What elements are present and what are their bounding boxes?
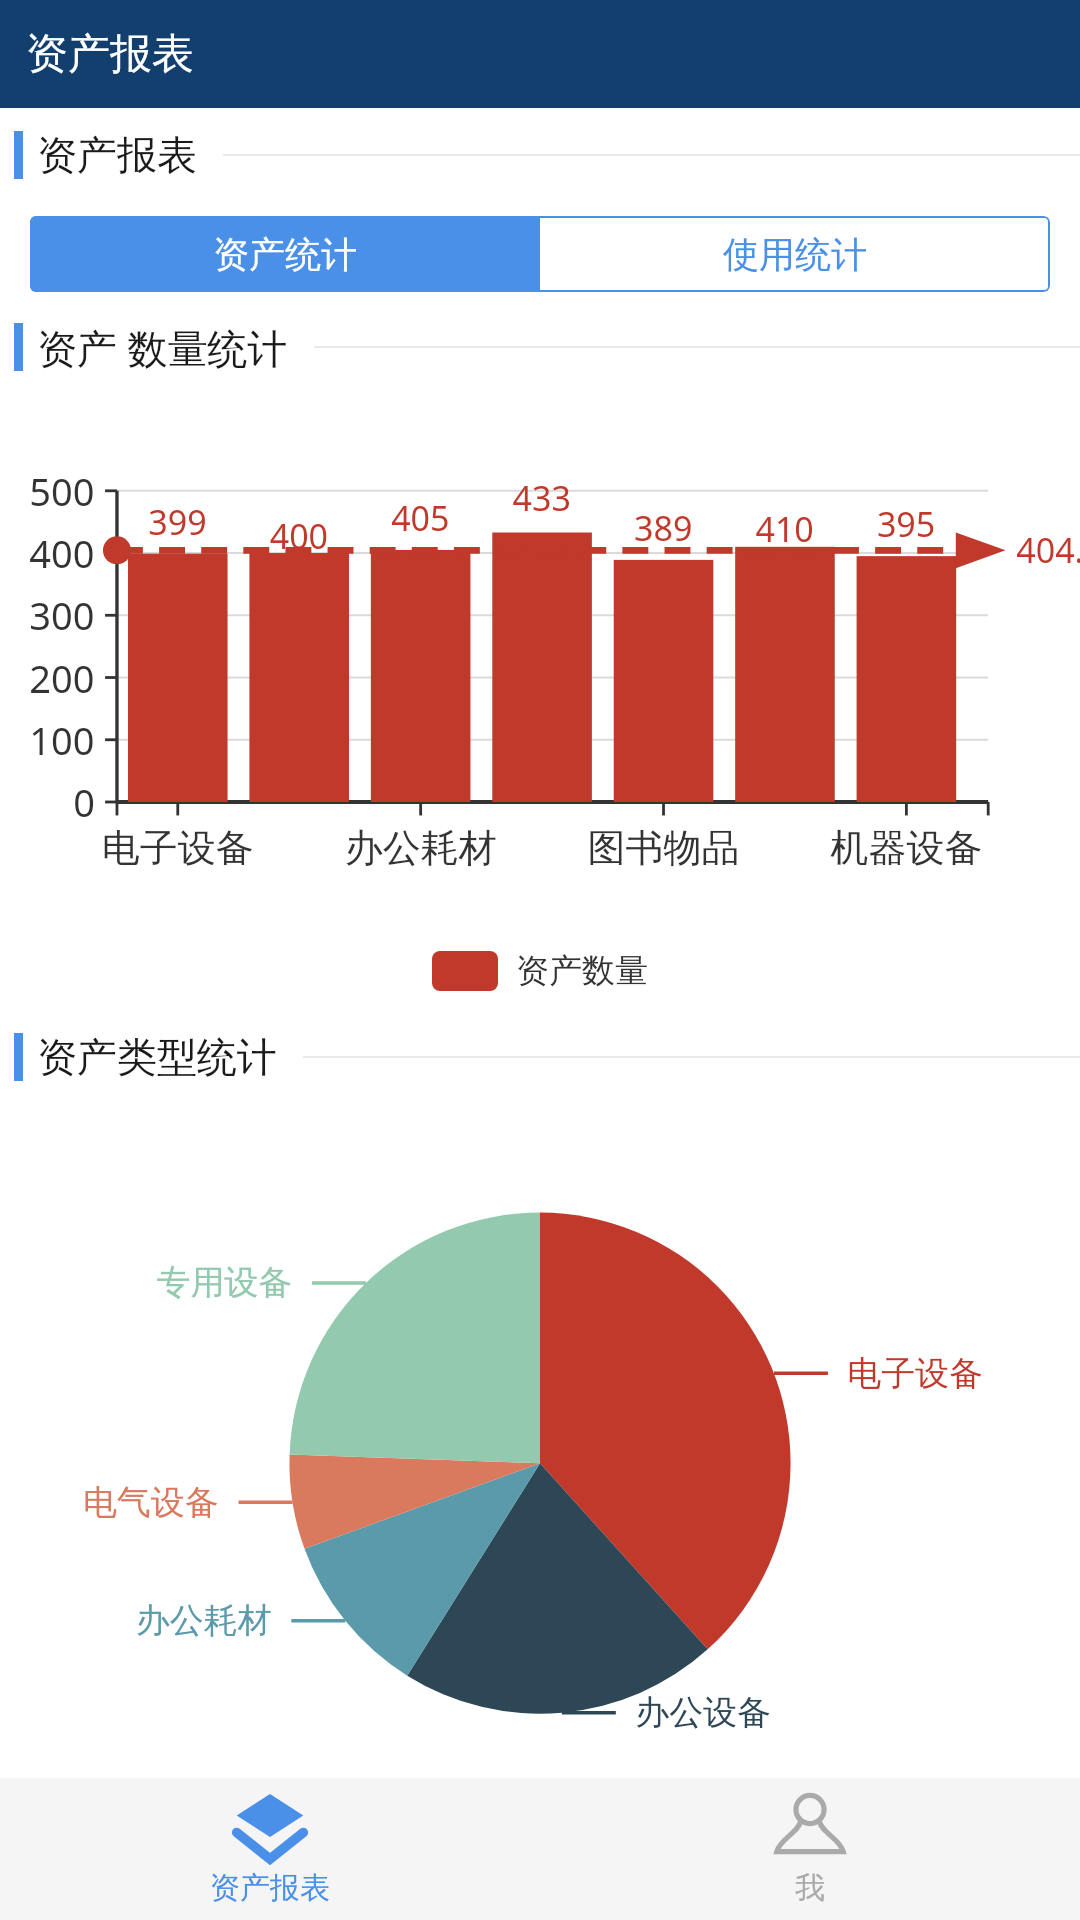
- staticText: 资产报表: [26, 28, 194, 81]
- staticText: 资产数量: [516, 950, 648, 992]
- staticText: 资产 数量统计: [37, 320, 288, 375]
- staticText: 资产类型统计: [37, 1032, 277, 1082]
- button[interactable]: 资产统计: [30, 216, 540, 292]
- staticText: 我: [795, 1869, 825, 1907]
- staticText: 资产报表: [210, 1869, 330, 1907]
- button[interactable]: 资产报表: [0, 1778, 540, 1920]
- staticText: 资产统计: [213, 232, 357, 277]
- staticText: 资产报表: [37, 130, 197, 180]
- button[interactable]: 我: [540, 1778, 1080, 1920]
- button[interactable]: 使用统计: [540, 216, 1050, 292]
- staticText: 使用统计: [723, 232, 867, 277]
